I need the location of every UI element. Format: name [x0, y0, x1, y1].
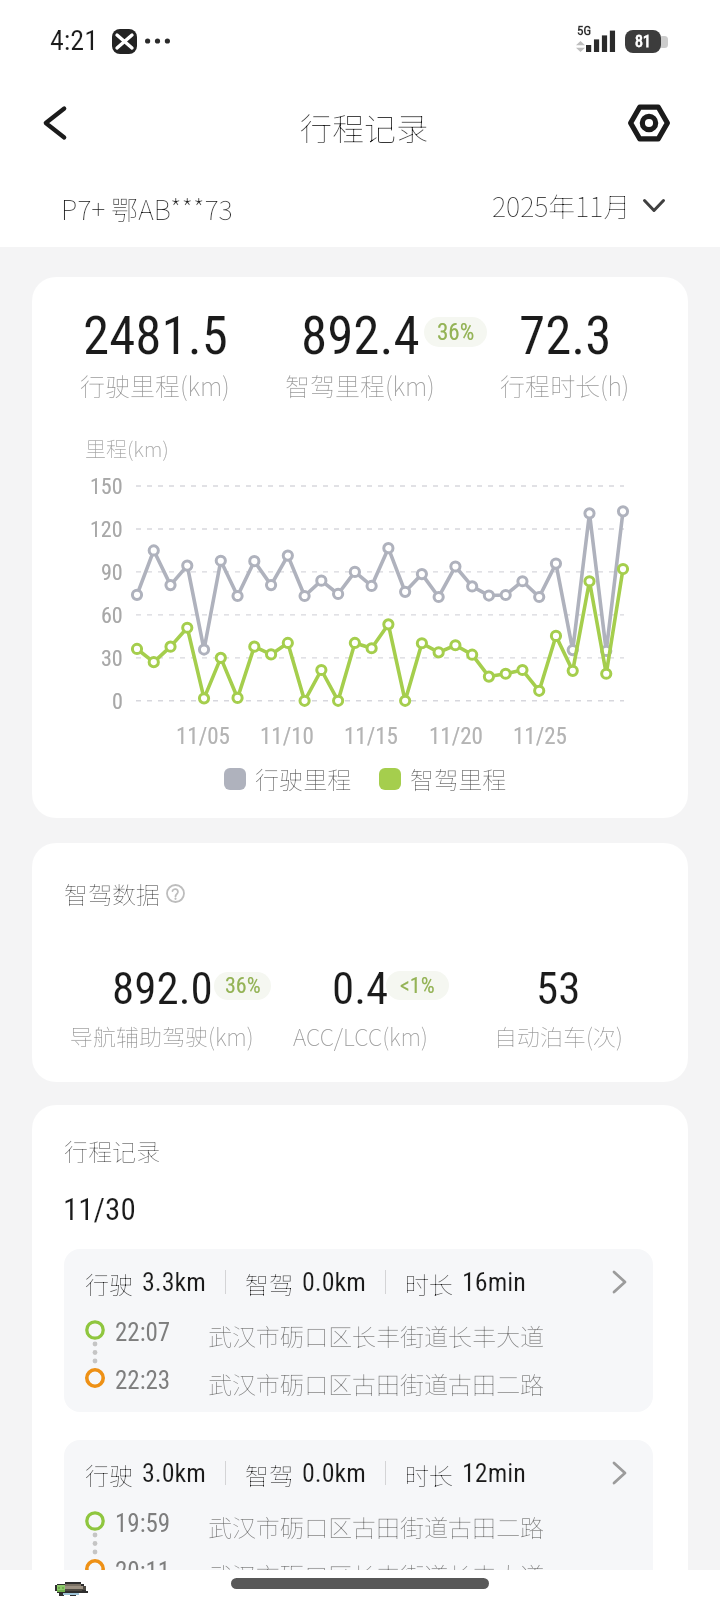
staticText: 5G — [577, 23, 592, 38]
staticText: <1% — [400, 973, 435, 999]
staticText: 11/10 — [260, 723, 314, 750]
staticText: 150 — [90, 474, 123, 500]
staticText: 11/20 — [429, 723, 483, 750]
staticText: 2481.5 — [83, 305, 228, 367]
staticText: 行程记录 — [64, 1133, 160, 1168]
staticText: 53 — [536, 962, 581, 1015]
button[interactable]: 行驶 — [64, 1440, 653, 1600]
staticText: 智驾 — [245, 1266, 293, 1298]
button[interactable]: 2025年11月 — [492, 186, 665, 225]
staticText: 智驾 — [245, 1457, 293, 1489]
staticText: 20:11 — [115, 1557, 171, 1586]
staticText: 3.3km — [142, 1267, 206, 1297]
staticText: 11/25 — [513, 723, 567, 750]
staticText: 行驶 — [85, 1266, 133, 1298]
staticText: 导航辅助驾驶(km) — [70, 1019, 254, 1052]
staticText: ACC/LCC(km) — [293, 1019, 428, 1052]
staticText: 武汉市砺口区长丰街道长丰大道 — [208, 1318, 544, 1353]
staticText: 12min — [462, 1458, 526, 1488]
staticText: 22:07 — [115, 1318, 171, 1347]
staticText: 2025年11月 — [492, 186, 631, 225]
staticText: 行程记录 — [300, 104, 429, 150]
staticText: 0 — [112, 689, 123, 715]
staticText: 72.3 — [519, 305, 612, 367]
staticText: 武汉市砺口区长丰街道长丰大道 — [208, 1557, 544, 1592]
staticText: 11/30 — [63, 1191, 136, 1227]
staticText: 36% — [437, 319, 475, 346]
staticText: 90 — [101, 560, 123, 586]
staticText: 11/15 — [344, 723, 398, 750]
staticText: 行驶 — [85, 1457, 133, 1489]
staticText: 892.4 — [301, 305, 420, 367]
staticText: 行驶里程(km) — [80, 367, 230, 403]
staticText: 时长 — [405, 1457, 453, 1489]
staticText: 3.0km — [142, 1458, 206, 1488]
staticText: 22:23 — [115, 1366, 171, 1395]
button[interactable]: Settings — [622, 96, 676, 150]
staticText: 19:59 — [115, 1509, 171, 1538]
staticText: 60 — [101, 603, 123, 629]
staticText: P7+ 鄂AB***73 — [61, 189, 233, 228]
staticText: 自动泊车(次) — [494, 1019, 623, 1052]
staticText: 36% — [225, 973, 261, 999]
staticText: 120 — [90, 517, 123, 543]
button[interactable]: Back — [30, 98, 80, 148]
staticText: 11/05 — [176, 723, 230, 750]
staticText: 里程(km) — [85, 433, 169, 463]
staticText: 0.0km — [302, 1267, 366, 1297]
button[interactable]: 行驶 — [64, 1249, 653, 1412]
staticText: 武汉市砺口区古田街道古田二路 — [208, 1509, 544, 1544]
staticText: 行程时长(h) — [500, 367, 630, 403]
staticText: 行驶里程 — [255, 761, 351, 796]
staticText: 智驾数据 — [64, 876, 160, 911]
staticText: 时长 — [405, 1266, 453, 1298]
staticText: 0.0km — [302, 1458, 366, 1488]
staticText: 智驾里程 — [410, 761, 506, 796]
staticText: 智驾里程(km) — [285, 367, 435, 403]
staticText: 892.0 — [112, 962, 213, 1015]
staticText: 0.4 — [332, 962, 389, 1015]
staticText: 16min — [462, 1267, 526, 1297]
staticText: 30 — [101, 646, 123, 672]
staticText: 81 — [635, 32, 651, 51]
staticText: 武汉市砺口区古田街道古田二路 — [208, 1366, 544, 1401]
staticText: 4:21 — [50, 24, 99, 57]
